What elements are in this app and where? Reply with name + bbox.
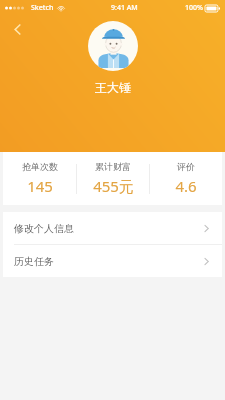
staticText: 455元 (93, 176, 134, 196)
staticText: 王大锤 (95, 80, 131, 95)
staticText: 145 (27, 176, 53, 196)
staticText: 4.6 (175, 176, 197, 196)
staticText: 修改个人信息 (14, 222, 74, 235)
staticText: 累计财富 (95, 161, 131, 172)
button[interactable]: 修改个人信息 (3, 212, 222, 244)
button[interactable]: Back (5, 17, 29, 41)
staticText: 抢单次数 (22, 161, 58, 172)
button[interactable]: 抢单次数 (3, 161, 76, 196)
staticText: 100% (185, 3, 203, 13)
button[interactable]: Profile avatar (88, 21, 138, 71)
button[interactable]: 历史任务 (3, 245, 222, 277)
button[interactable]: 累计财富 (77, 161, 149, 196)
button[interactable]: 评价 (150, 161, 222, 196)
staticText: Sketch (31, 3, 54, 13)
staticText: 评价 (177, 161, 195, 172)
staticText: 历史任务 (14, 255, 54, 268)
staticText: 9:41 AM (111, 3, 138, 13)
